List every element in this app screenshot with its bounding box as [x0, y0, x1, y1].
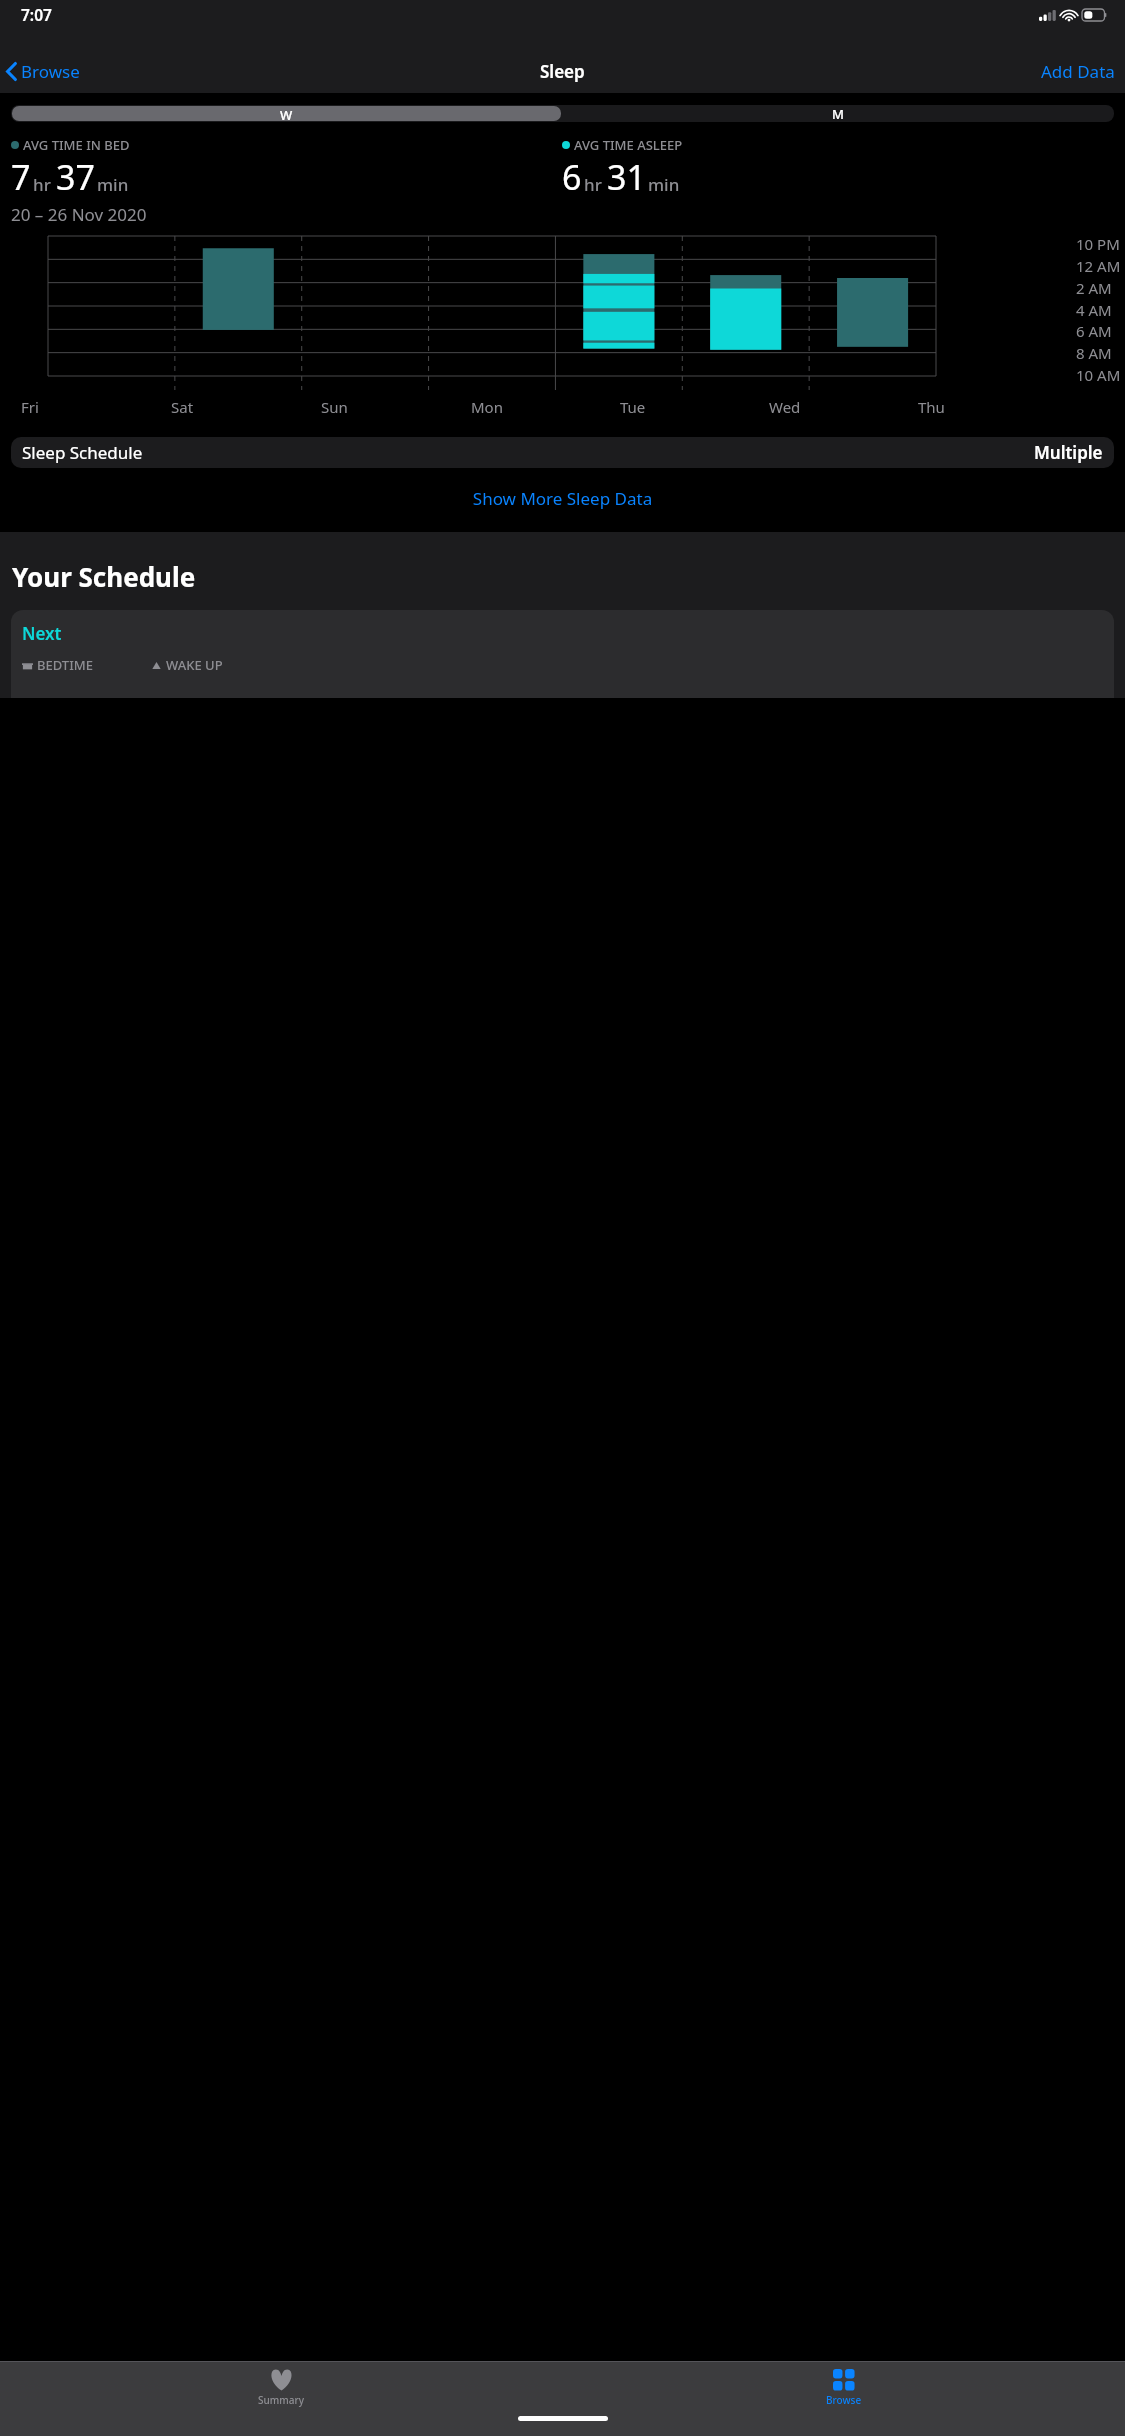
button[interactable]: Browse	[562, 2362, 1125, 2411]
staticText: 7:07	[21, 4, 52, 25]
staticText: min	[97, 173, 129, 196]
staticText: 7	[11, 154, 31, 200]
button[interactable]: Summary	[0, 2362, 562, 2411]
staticText: Sleep Schedule	[22, 441, 143, 464]
button[interactable]: W	[12, 106, 561, 121]
staticText: W	[280, 106, 293, 121]
staticText: Fri	[21, 397, 39, 417]
staticText: Wed	[769, 397, 801, 417]
staticText: hr	[584, 173, 602, 196]
staticText: 10 PM	[1076, 234, 1120, 254]
staticText: hr	[33, 173, 51, 196]
staticText: Sat	[171, 397, 194, 417]
staticText: Sleep	[540, 60, 585, 83]
staticText: Thu	[918, 397, 945, 417]
staticText: Summary	[258, 2393, 304, 2407]
staticText: 6	[562, 154, 582, 200]
button[interactable]: Show More Sleep Data	[0, 480, 1125, 517]
staticText: Sun	[321, 397, 348, 417]
staticText: 12 AM	[1076, 256, 1121, 276]
staticText: 10 AM	[1076, 365, 1121, 385]
staticText: Tue	[620, 397, 646, 417]
staticText: Mon	[471, 397, 503, 417]
staticText: Next	[22, 622, 62, 645]
button[interactable]: Next	[11, 610, 1114, 698]
button[interactable]: Sleep Schedule	[11, 437, 1114, 468]
staticText: 37	[56, 154, 95, 200]
staticText: Your Schedule	[12, 559, 196, 594]
staticText: 6 AM	[1076, 321, 1112, 341]
staticText: Multiple	[1034, 441, 1103, 464]
staticText: Browse	[21, 60, 80, 83]
button[interactable]: Add Data	[1031, 56, 1125, 86]
staticText: 2 AM	[1076, 278, 1112, 298]
staticText: 31	[607, 154, 646, 200]
button[interactable]: M	[562, 105, 1114, 122]
staticText: AVG TIME ASLEEP	[574, 136, 683, 154]
staticText: BEDTIME	[37, 656, 93, 674]
staticText: WAKE UP	[166, 656, 223, 674]
staticText: min	[648, 173, 680, 196]
button[interactable]: Browse	[0, 57, 86, 86]
staticText: M	[832, 105, 844, 122]
staticText: 4 AM	[1076, 300, 1112, 320]
staticText: 20 – 26 Nov 2020	[11, 203, 147, 226]
staticText: AVG TIME IN BED	[23, 136, 130, 154]
staticText: 8 AM	[1076, 343, 1112, 363]
staticText: Browse	[826, 2393, 862, 2407]
